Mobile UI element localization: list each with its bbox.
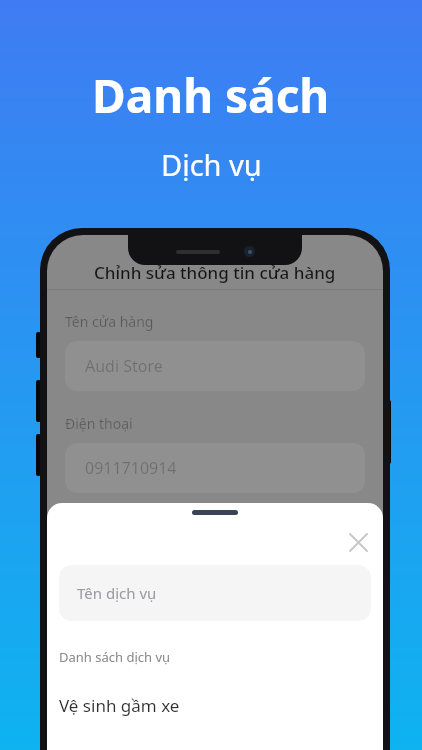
staticText: Audi Store — [85, 355, 163, 377]
staticText: Dịch vụ — [161, 145, 262, 184]
staticText: Tên dịch vụ — [77, 583, 157, 603]
staticText: Danh sách dịch vụ — [59, 648, 171, 666]
button[interactable]: Vệ sinh gầm xe — [47, 691, 383, 720]
staticText: Danh sách — [92, 64, 330, 127]
button[interactable]: Đóng — [341, 525, 375, 559]
staticText: 0911710914 — [85, 457, 177, 479]
staticText: Chỉnh sửa thông tin cửa hàng — [94, 261, 336, 284]
button[interactable]: Tên dịch vụ — [59, 565, 371, 621]
staticText: Tên cửa hàng — [65, 312, 154, 331]
staticText: Điện thoại — [65, 414, 133, 433]
staticText: Vệ sinh gầm xe — [59, 694, 180, 717]
